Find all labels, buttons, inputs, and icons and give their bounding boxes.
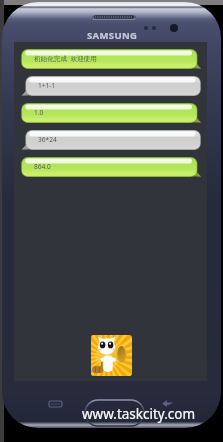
staticText: 864.0 [34, 162, 51, 171]
staticText: SAMSUNG [87, 29, 138, 42]
button[interactable]: 初始化完成 欢迎使用 [14, 49, 207, 69]
button[interactable]: Menu [49, 401, 62, 407]
staticText: 1.0 [34, 108, 44, 117]
button[interactable]: Home [85, 400, 144, 426]
staticText: 36*24 [38, 135, 57, 144]
button[interactable]: 1.0 [14, 103, 207, 123]
button[interactable]: App icon [91, 335, 132, 376]
staticText: 1+1-1 [38, 81, 56, 90]
button[interactable]: 36*24 [14, 130, 207, 150]
button[interactable]: 864.0 [14, 157, 207, 177]
staticText: 初始化完成 欢迎使用 [34, 54, 97, 63]
staticText: www.taskcity.com [82, 405, 196, 423]
button[interactable]: 1+1-1 [14, 76, 207, 96]
button[interactable]: Back [162, 400, 173, 407]
